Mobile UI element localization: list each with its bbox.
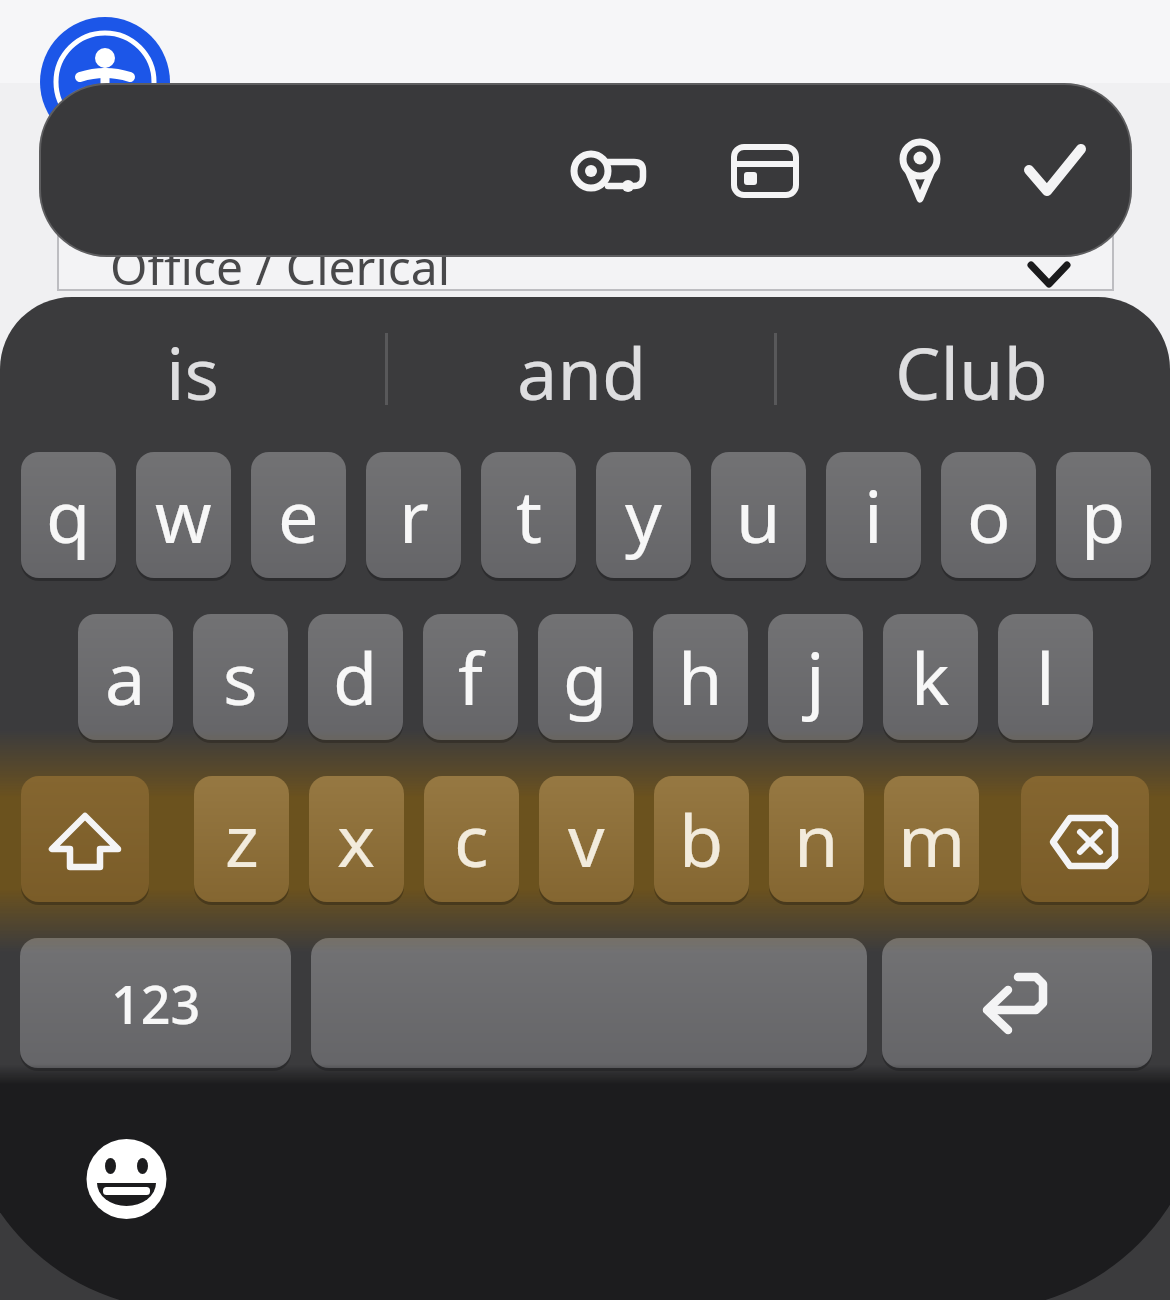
staticText: b xyxy=(679,790,724,888)
button[interactable]: u xyxy=(711,452,806,578)
button[interactable] xyxy=(729,137,799,207)
button[interactable]: Club xyxy=(777,303,1166,441)
staticText: k xyxy=(911,628,950,726)
button[interactable]: r xyxy=(366,452,461,578)
staticText: x xyxy=(337,790,376,888)
button[interactable]: i xyxy=(826,452,921,578)
staticText: h xyxy=(678,628,723,726)
button[interactable] xyxy=(21,776,149,902)
staticText: f xyxy=(458,628,483,726)
button[interactable]: z xyxy=(194,776,289,902)
button[interactable]: p xyxy=(1056,452,1151,578)
staticText: c xyxy=(454,790,489,888)
button[interactable]: k xyxy=(883,614,978,740)
staticText: and xyxy=(517,323,647,421)
staticText: a xyxy=(105,628,146,726)
staticText: v xyxy=(568,790,605,888)
button[interactable] xyxy=(1020,137,1090,207)
staticText: e xyxy=(278,466,319,564)
button[interactable]: c xyxy=(424,776,519,902)
button[interactable]: f xyxy=(423,614,518,740)
staticText: j xyxy=(806,628,825,726)
button[interactable] xyxy=(882,938,1152,1068)
staticText: y xyxy=(625,466,662,564)
button[interactable] xyxy=(57,180,1114,291)
staticText: r xyxy=(399,466,429,564)
staticText: Club xyxy=(895,323,1048,421)
button[interactable] xyxy=(556,137,626,207)
staticText: n xyxy=(794,790,839,888)
button[interactable]: s xyxy=(193,614,288,740)
button[interactable] xyxy=(86,1139,166,1219)
staticText: Office / Clerical xyxy=(110,234,451,299)
staticText: i xyxy=(864,466,883,564)
button[interactable]: x xyxy=(309,776,404,902)
button[interactable] xyxy=(311,938,867,1068)
button[interactable]: e xyxy=(251,452,346,578)
button[interactable]: is xyxy=(0,303,386,441)
button[interactable] xyxy=(885,137,955,207)
staticText: p xyxy=(1081,466,1126,564)
staticText: z xyxy=(225,790,259,888)
staticText: u xyxy=(736,466,781,564)
button[interactable]: b xyxy=(654,776,749,902)
button[interactable]: g xyxy=(538,614,633,740)
button[interactable]: j xyxy=(768,614,863,740)
staticText: g xyxy=(563,628,608,726)
button[interactable]: d xyxy=(308,614,403,740)
staticText: d xyxy=(333,628,378,726)
button[interactable] xyxy=(1021,776,1149,902)
staticText: t xyxy=(516,466,542,564)
button[interactable]: t xyxy=(481,452,576,578)
button[interactable]: n xyxy=(769,776,864,902)
staticText: is xyxy=(166,323,220,421)
button[interactable]: v xyxy=(539,776,634,902)
button[interactable]: m xyxy=(884,776,979,902)
button[interactable]: 123 xyxy=(20,938,291,1068)
button[interactable]: y xyxy=(596,452,691,578)
staticText: w xyxy=(155,466,212,564)
staticText: o xyxy=(967,466,1011,564)
staticText: l xyxy=(1036,628,1055,726)
button[interactable]: l xyxy=(998,614,1093,740)
button[interactable]: o xyxy=(941,452,1036,578)
button[interactable]: a xyxy=(78,614,173,740)
button[interactable]: w xyxy=(136,452,231,578)
button[interactable]: and xyxy=(386,303,777,441)
staticText: s xyxy=(223,628,258,726)
staticText: q xyxy=(46,466,91,564)
button[interactable]: h xyxy=(653,614,748,740)
staticText: m xyxy=(898,790,966,888)
staticText: 123 xyxy=(111,968,201,1039)
button[interactable]: q xyxy=(21,452,116,578)
